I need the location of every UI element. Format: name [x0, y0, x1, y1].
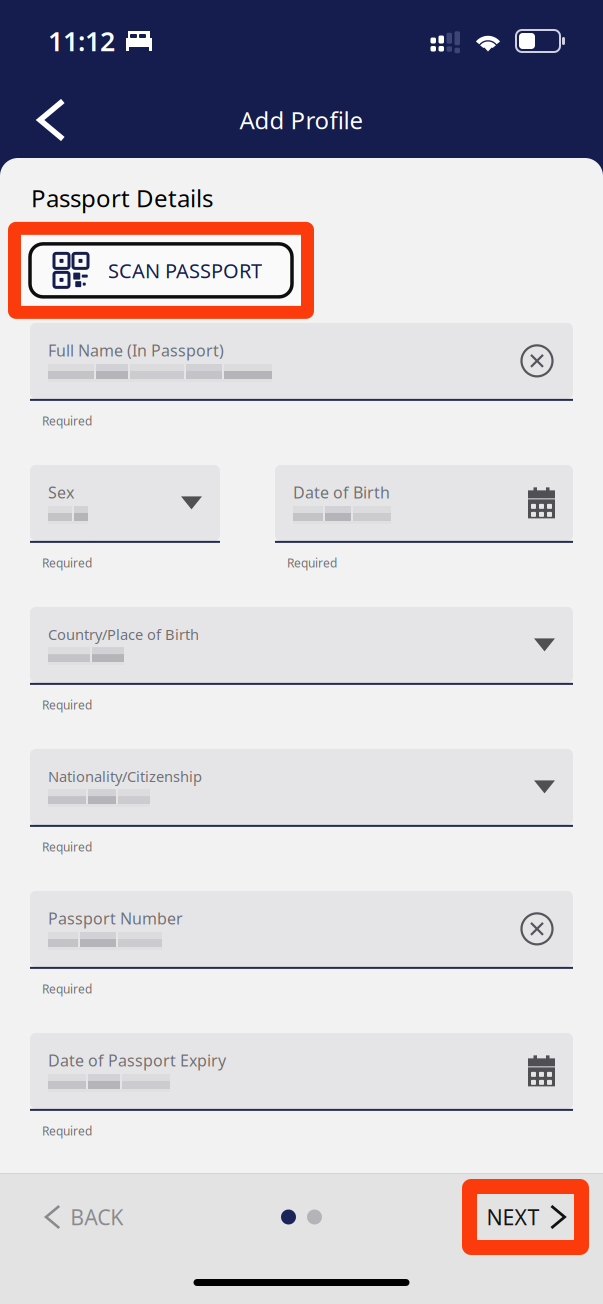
staticText: Required — [42, 1123, 92, 1139]
staticText: Required — [287, 555, 337, 571]
staticText: Required — [42, 697, 92, 713]
staticText: Add Profile — [239, 104, 363, 136]
button[interactable]: Clear Passport Number — [519, 911, 555, 947]
staticText: Sex — [48, 482, 74, 503]
staticText: Nationality/Citizenship — [48, 767, 202, 786]
staticText: Required — [42, 413, 92, 429]
button[interactable]: NEXT — [462, 1179, 589, 1255]
staticText: NEXT — [486, 1203, 539, 1231]
staticText: Passport Number — [48, 908, 183, 929]
staticText: 11:12 — [48, 23, 115, 59]
staticText: Full Name (In Passport) — [48, 340, 224, 361]
button[interactable]: Back — [18, 85, 85, 155]
button[interactable]: Clear Full Name — [519, 343, 555, 379]
staticText: Passport Details — [31, 182, 213, 214]
staticText: Date of Passport Expiry — [48, 1050, 226, 1071]
staticText: SCAN PASSPORT — [108, 257, 262, 284]
staticText: Required — [42, 981, 92, 997]
button[interactable]: SCAN PASSPORT — [8, 222, 314, 319]
button[interactable]: BACK — [30, 1189, 139, 1245]
staticText: Required — [42, 555, 92, 571]
staticText: Date of Birth — [293, 482, 390, 503]
staticText: Required — [42, 839, 92, 855]
staticText: BACK — [70, 1203, 123, 1231]
staticText: Country/Place of Birth — [48, 625, 199, 644]
